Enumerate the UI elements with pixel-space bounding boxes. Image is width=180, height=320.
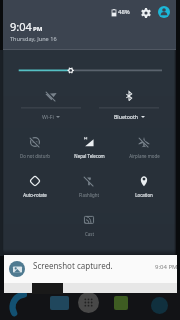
staticText: Bluetooth <box>114 113 139 120</box>
button[interactable]: User profile <box>158 6 170 18</box>
button[interactable]: Settings <box>140 7 151 18</box>
staticText: Do not disturb <box>20 153 50 159</box>
button[interactable]: Airplane mode <box>117 136 171 160</box>
button[interactable]: Brightness <box>3 58 176 83</box>
staticText: Nepal Telecom <box>74 153 105 159</box>
button[interactable]: Auto-rotate <box>8 175 62 199</box>
button[interactable]: Phone <box>12 294 38 320</box>
staticText: Flashlight <box>79 192 99 198</box>
staticText: Airplane mode <box>129 153 160 159</box>
button[interactable]: Screenshot captured. <box>4 255 177 283</box>
staticText: 48% <box>118 8 130 16</box>
button[interactable]: Cast <box>62 214 116 238</box>
staticText: Location <box>135 192 153 198</box>
staticText: 9:04 PM <box>155 263 178 271</box>
button[interactable]: Wi-Fi <box>21 90 81 120</box>
staticText: Auto-rotate <box>23 192 47 198</box>
staticText: Thursday, June 16 <box>10 35 57 43</box>
button[interactable]: Camera <box>50 296 69 310</box>
button[interactable]: Bluetooth <box>99 90 159 120</box>
staticText: Cast <box>85 231 94 237</box>
button[interactable]: Social <box>151 297 168 314</box>
button[interactable]: Do not disturb <box>8 136 62 160</box>
button[interactable]: Flashlight <box>62 175 116 199</box>
staticText: 9:04 <box>10 19 32 34</box>
button[interactable]: Apps <box>78 292 99 313</box>
button[interactable]: Messages <box>114 296 128 310</box>
button[interactable]: Nepal Telecom <box>62 136 116 160</box>
staticText: PM <box>33 25 43 33</box>
button[interactable]: Location <box>117 175 171 199</box>
staticText: Wi-Fi <box>42 113 54 120</box>
staticText: Screenshot captured. <box>33 260 113 271</box>
